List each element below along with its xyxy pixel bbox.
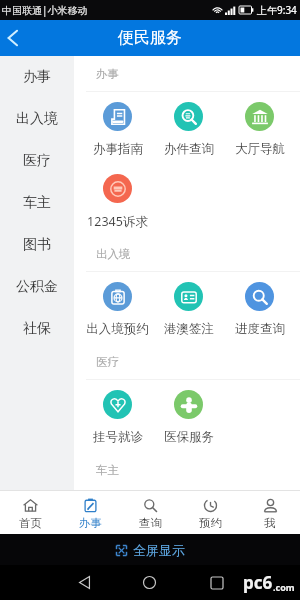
staticText: 办事	[96, 67, 119, 81]
staticText: 医疗	[23, 152, 51, 170]
button[interactable]: 出入境预约	[82, 272, 153, 344]
staticText: 图书	[23, 236, 51, 254]
staticText: 港澳签注	[164, 321, 214, 337]
staticText: 办事指南	[93, 141, 143, 157]
staticText: .com	[273, 581, 295, 593]
staticText: 车主	[96, 463, 119, 477]
staticText: 出入境	[16, 110, 58, 128]
button[interactable]: 大厅导航	[224, 92, 295, 164]
button[interactable]: 出入境	[0, 98, 74, 140]
staticText: 办件查询	[164, 141, 214, 157]
staticText: 大厅导航	[235, 141, 285, 157]
button[interactable]: 办事指南	[82, 92, 153, 164]
button[interactable]: 我	[240, 491, 300, 534]
button[interactable]: 办件查询	[153, 92, 224, 164]
staticText: 我	[264, 516, 276, 530]
button[interactable]: 办事	[60, 491, 120, 534]
button[interactable]: Back	[0, 20, 26, 56]
button[interactable]: 社保	[0, 308, 74, 350]
button[interactable]: 公积金	[0, 266, 74, 308]
staticText: 中国联通|小米移动	[2, 3, 88, 17]
button[interactable]: Home	[127, 565, 172, 600]
button[interactable]: 港澳签注	[153, 272, 224, 344]
button[interactable]: 进度查询	[224, 272, 295, 344]
button[interactable]: 全屏显示	[116, 542, 185, 558]
button[interactable]: 首页	[0, 491, 60, 534]
staticText: 首页	[19, 516, 42, 530]
button[interactable]: 预约	[180, 491, 240, 534]
button[interactable]: 挂号就诊	[82, 380, 153, 452]
staticText: pc6	[243, 571, 273, 594]
button[interactable]: 医疗	[0, 140, 74, 182]
button[interactable]: 12345诉求	[82, 164, 153, 236]
staticText: 进度查询	[235, 321, 285, 337]
staticText: 预约	[199, 516, 222, 530]
staticText: 12345诉求	[87, 213, 148, 230]
staticText: 社保	[23, 320, 51, 338]
staticText: 医疗	[96, 355, 119, 369]
staticText: 出入境预约	[86, 321, 149, 337]
staticText: 出入境	[96, 247, 131, 261]
button[interactable]: Back	[62, 565, 107, 600]
staticText: 查询	[139, 516, 162, 530]
staticText: 医保服务	[164, 429, 214, 445]
staticText: 车主	[23, 194, 51, 212]
button[interactable]: 图书	[0, 224, 74, 266]
button[interactable]: 车主	[0, 182, 74, 224]
staticText: 上午9:34	[257, 3, 297, 17]
button[interactable]: 办事	[0, 56, 74, 98]
staticText: 办事	[79, 516, 102, 530]
staticText: 全屏显示	[133, 542, 185, 558]
staticText: 挂号就诊	[93, 429, 143, 445]
button[interactable]: 查询	[120, 491, 180, 534]
staticText: 公积金	[16, 278, 58, 296]
staticText: 便民服务	[118, 28, 182, 48]
button[interactable]: 医保服务	[153, 380, 224, 452]
button[interactable]: Recents	[194, 565, 239, 600]
staticText: 办事	[23, 68, 51, 86]
